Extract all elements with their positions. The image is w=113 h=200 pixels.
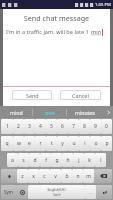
button[interactable]: u bbox=[68, 136, 79, 151]
staticText: a bbox=[11, 157, 14, 164]
button[interactable]: Shift bbox=[1, 169, 17, 183]
button[interactable]: 6 bbox=[57, 119, 68, 134]
staticText: o bbox=[94, 140, 98, 147]
staticText: English(UK) bbox=[47, 187, 66, 192]
staticText: Swift bbox=[53, 192, 61, 197]
staticText: minutes bbox=[75, 109, 95, 116]
button[interactable]: Backspace bbox=[94, 169, 112, 183]
staticText: 5 bbox=[50, 123, 53, 130]
button[interactable]: Space bbox=[28, 185, 85, 199]
staticText: k bbox=[88, 157, 91, 164]
button[interactable]: 4 bbox=[35, 119, 46, 134]
staticText: u bbox=[72, 140, 76, 147]
staticText: l bbox=[100, 157, 102, 164]
button[interactable]: c bbox=[39, 169, 50, 183]
button[interactable]: Sym bbox=[1, 185, 16, 199]
button[interactable]: Settings bbox=[16, 185, 28, 199]
staticText: d bbox=[33, 157, 37, 164]
staticText: Send bbox=[26, 92, 39, 99]
staticText: Cancel bbox=[72, 92, 89, 99]
button[interactable]: 1 bbox=[1, 119, 13, 134]
staticText: 2 bbox=[17, 123, 20, 130]
staticText: 4 bbox=[39, 123, 42, 130]
staticText: min bbox=[45, 109, 55, 116]
button[interactable]: Enter bbox=[96, 185, 112, 199]
staticText: . bbox=[90, 189, 92, 196]
button[interactable]: d bbox=[29, 153, 40, 167]
staticText: 0 bbox=[105, 123, 108, 130]
staticText: 6 bbox=[61, 123, 64, 130]
staticText: 1 bbox=[6, 123, 9, 130]
button[interactable]: mind bbox=[0, 106, 32, 118]
button[interactable]: w bbox=[13, 136, 24, 151]
button[interactable]: 0 bbox=[101, 119, 112, 134]
staticText: 8 bbox=[83, 123, 86, 130]
staticText: 7 bbox=[72, 123, 75, 130]
button[interactable]: 2 bbox=[13, 119, 24, 134]
staticText: c bbox=[43, 173, 46, 180]
button[interactable]: More suggestions bbox=[103, 106, 113, 118]
staticText: z bbox=[21, 173, 24, 180]
button[interactable]: Cancel bbox=[60, 90, 101, 100]
staticText: f bbox=[45, 157, 47, 164]
button[interactable]: v bbox=[50, 169, 61, 183]
button[interactable]: x bbox=[28, 169, 39, 183]
staticText: y bbox=[61, 140, 64, 147]
button[interactable]: minutes bbox=[67, 106, 103, 118]
button[interactable]: 3 bbox=[24, 119, 35, 134]
button[interactable]: min bbox=[33, 106, 66, 118]
staticText: Sym bbox=[4, 189, 13, 195]
staticText: Send chat message bbox=[3, 13, 110, 23]
staticText: s bbox=[22, 157, 25, 164]
button[interactable]: . bbox=[85, 185, 96, 199]
button[interactable]: g bbox=[51, 153, 62, 167]
staticText: p bbox=[105, 140, 109, 147]
staticText: mind bbox=[10, 109, 23, 116]
button[interactable]: 8 bbox=[79, 119, 90, 134]
button[interactable]: i bbox=[79, 136, 90, 151]
button[interactable]: o bbox=[90, 136, 101, 151]
button[interactable]: y bbox=[57, 136, 68, 151]
staticText: 9 bbox=[94, 123, 97, 130]
staticText: b bbox=[65, 173, 69, 180]
button[interactable]: 9 bbox=[90, 119, 101, 134]
staticText: w bbox=[17, 140, 21, 147]
staticText: v bbox=[54, 173, 57, 180]
staticText: I'm in a traffic jam, will be late 1 bbox=[6, 28, 91, 36]
button[interactable]: k bbox=[84, 153, 95, 167]
staticText: t bbox=[51, 140, 53, 147]
staticText: min bbox=[91, 28, 102, 36]
button[interactable]: m bbox=[83, 169, 94, 183]
button[interactable]: q bbox=[1, 136, 13, 151]
button[interactable]: 5 bbox=[46, 119, 57, 134]
staticText: r bbox=[39, 140, 42, 147]
button[interactable]: z bbox=[17, 169, 28, 183]
staticText: m bbox=[86, 173, 91, 180]
button[interactable]: s bbox=[18, 153, 29, 167]
staticText: 3 bbox=[28, 123, 31, 130]
staticText: i bbox=[84, 140, 86, 147]
button[interactable]: h bbox=[62, 153, 73, 167]
button[interactable]: f bbox=[40, 153, 51, 167]
button[interactable]: l bbox=[95, 153, 106, 167]
button[interactable]: r bbox=[35, 136, 46, 151]
button[interactable]: j bbox=[73, 153, 84, 167]
staticText: x bbox=[32, 173, 35, 180]
button[interactable]: p bbox=[101, 136, 112, 151]
button[interactable]: t bbox=[46, 136, 57, 151]
staticText: g bbox=[55, 157, 59, 164]
staticText: 1:35 PM bbox=[95, 2, 111, 8]
staticText: n bbox=[76, 173, 80, 180]
button[interactable]: b bbox=[61, 169, 72, 183]
button[interactable]: a bbox=[7, 153, 18, 167]
staticText: j bbox=[78, 157, 80, 164]
staticText: q bbox=[5, 140, 9, 147]
button[interactable]: e bbox=[24, 136, 35, 151]
staticText: e bbox=[28, 140, 31, 147]
button[interactable]: 7 bbox=[68, 119, 79, 134]
button[interactable]: n bbox=[72, 169, 83, 183]
staticText: h bbox=[66, 157, 70, 164]
button[interactable]: Send bbox=[12, 90, 52, 100]
